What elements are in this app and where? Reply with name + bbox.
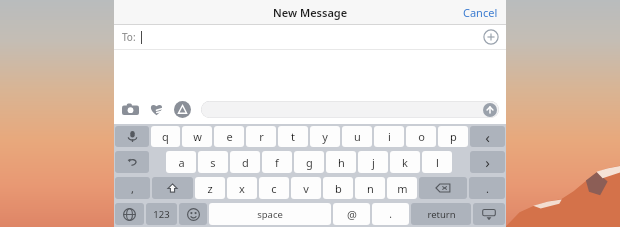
button[interactable]: t (278, 126, 308, 147)
staticText: To: (122, 30, 136, 44)
button[interactable]: Next (470, 151, 505, 173)
button[interactable]: Cancel (455, 1, 506, 24)
staticText: a (178, 155, 185, 170)
button[interactable]: r (246, 126, 276, 147)
button[interactable]: Previous (470, 126, 505, 147)
button[interactable]: b (323, 177, 353, 199)
staticText: k (402, 155, 408, 170)
button[interactable]: space (209, 203, 331, 225)
staticText: o (418, 129, 425, 144)
staticText: q (162, 129, 169, 144)
staticText: w (193, 129, 202, 144)
button[interactable]: v (291, 177, 321, 199)
button[interactable]: . (469, 177, 505, 199)
button[interactable]: @ (333, 203, 370, 225)
staticText: › (485, 152, 490, 172)
staticText: j (372, 155, 375, 170)
button[interactable]: x (227, 177, 257, 199)
button[interactable]: Undo (115, 151, 149, 173)
button[interactable]: Hide keyboard (473, 203, 505, 225)
staticText: . (389, 207, 392, 221)
staticText: @ (347, 207, 357, 222)
staticText: 123 (153, 208, 170, 221)
staticText: space (257, 208, 283, 221)
button[interactable]: 123 (146, 203, 177, 225)
button[interactable]: Send (201, 101, 499, 118)
staticText: New Message (273, 5, 348, 20)
staticText: m (397, 181, 408, 196)
button[interactable]: , (115, 177, 150, 199)
staticText: z (207, 181, 213, 196)
button[interactable]: Delete (419, 177, 467, 199)
staticText: y (322, 129, 328, 144)
button[interactable]: App Store (173, 100, 192, 119)
button[interactable]: s (198, 151, 228, 173)
staticText: f (275, 155, 279, 170)
button[interactable]: j (358, 151, 388, 173)
staticText: i (388, 129, 391, 144)
staticText: . (486, 181, 489, 196)
staticText: , (131, 181, 134, 196)
button[interactable]: y (310, 126, 340, 147)
button[interactable]: Add contact (483, 29, 499, 45)
staticText: ‹ (485, 127, 490, 147)
button[interactable]: Languages (115, 203, 144, 225)
staticText: t (291, 129, 295, 144)
button[interactable]: k (390, 151, 420, 173)
button[interactable]: Dictate (115, 126, 149, 147)
button[interactable]: Emoji (179, 203, 207, 225)
staticText: g (306, 155, 313, 170)
button[interactable]: Send (483, 103, 497, 117)
button[interactable]: h (326, 151, 356, 173)
staticText: d (242, 155, 249, 170)
staticText: h (338, 155, 345, 170)
button[interactable]: n (355, 177, 385, 199)
staticText: p (450, 129, 457, 144)
button[interactable]: c (259, 177, 289, 199)
button[interactable]: Shift (152, 177, 193, 199)
staticText: Cancel (463, 5, 498, 20)
staticText: u (354, 129, 361, 144)
button[interactable]: m (387, 177, 417, 199)
button[interactable]: g (294, 151, 324, 173)
button[interactable]: i (374, 126, 404, 147)
button[interactable]: u (342, 126, 372, 147)
staticText: c (271, 181, 277, 196)
staticText: x (239, 181, 245, 196)
staticText: r (259, 129, 264, 144)
button[interactable]: w (182, 126, 212, 147)
button[interactable]: z (195, 177, 225, 199)
staticText: e (226, 129, 233, 144)
button[interactable]: o (406, 126, 436, 147)
button[interactable]: p (438, 126, 468, 147)
button[interactable]: return (411, 203, 471, 225)
button[interactable]: . (372, 203, 409, 225)
staticText: l (436, 155, 439, 170)
button[interactable]: a (166, 151, 196, 173)
staticText: b (335, 181, 342, 196)
button[interactable]: Camera (121, 100, 140, 119)
button[interactable]: e (214, 126, 244, 147)
staticText: v (303, 181, 309, 196)
staticText: n (367, 181, 374, 196)
button[interactable]: Digital Touch (147, 100, 166, 119)
button[interactable]: l (422, 151, 452, 173)
staticText: s (210, 155, 216, 170)
staticText: return (427, 208, 456, 221)
button[interactable]: q (151, 126, 180, 147)
button[interactable]: d (230, 151, 260, 173)
button[interactable]: f (262, 151, 292, 173)
